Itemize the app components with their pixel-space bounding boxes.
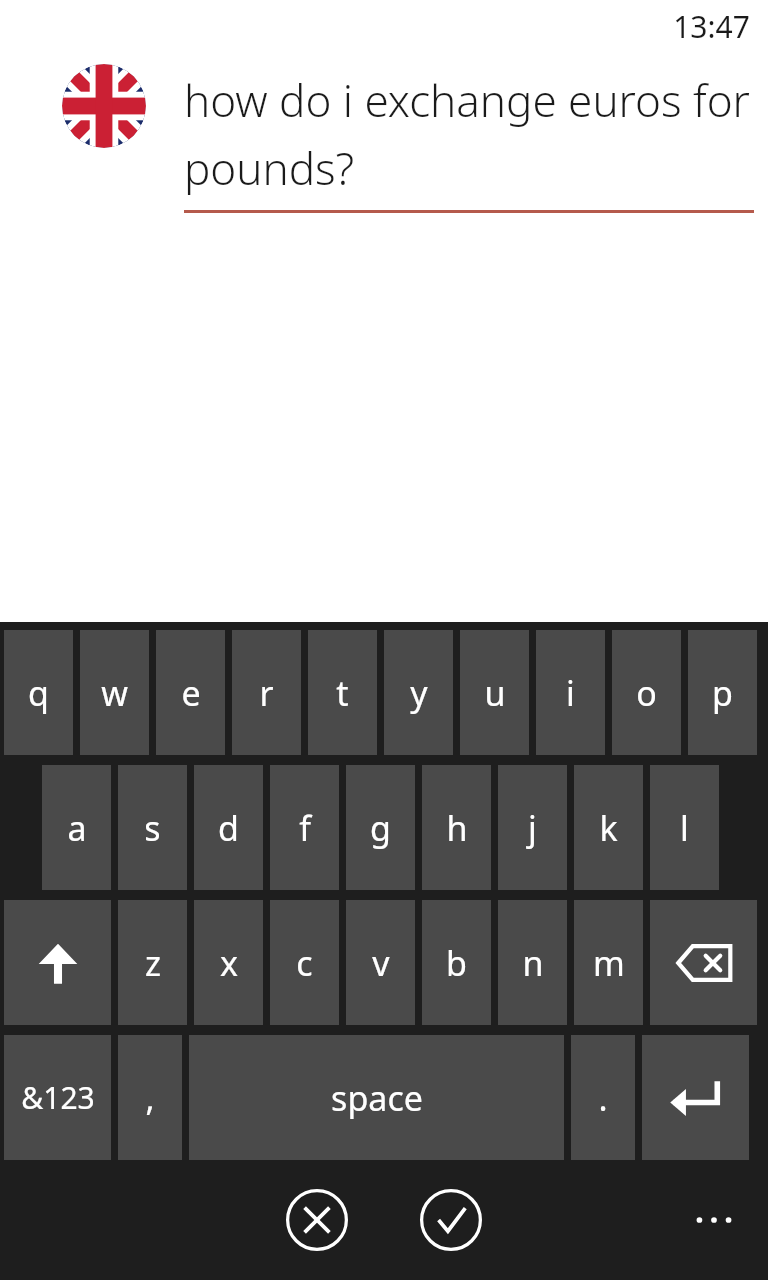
staticText: , [145,1075,155,1121]
button[interactable]: More options [682,1188,746,1252]
button[interactable]: q [4,630,73,755]
staticText: l [680,805,689,851]
button[interactable]: Shift [4,900,111,1025]
staticText: o [636,670,657,716]
staticText: n [522,940,544,986]
staticText: how do i exchange euros for pounds? [184,70,754,198]
staticText: d [218,805,239,851]
staticText: t [336,670,349,716]
button[interactable]: d [194,765,263,890]
staticText: c [296,940,313,986]
staticText: 13:47 [673,6,750,47]
staticText: j [528,805,537,851]
staticText: k [599,805,618,851]
button[interactable]: x [194,900,263,1025]
staticText: s [144,805,161,851]
button[interactable]: , [118,1035,182,1160]
staticText: y [410,670,428,716]
staticText: &123 [21,1077,95,1118]
button[interactable]: y [384,630,453,755]
button[interactable]: r [232,630,301,755]
staticText: a [67,805,87,851]
button[interactable]: w [80,630,149,755]
button[interactable]: z [118,900,187,1025]
button[interactable]: f [270,765,339,890]
staticText: g [370,805,391,851]
button[interactable]: v [346,900,415,1025]
button[interactable]: t [308,630,377,755]
staticText: i [566,670,575,716]
button[interactable]: p [688,630,757,755]
button[interactable]: j [498,765,567,890]
button[interactable]: Cancel [282,1185,352,1255]
button[interactable]: . [571,1035,635,1160]
button[interactable]: n [498,900,567,1025]
button[interactable]: g [346,765,415,890]
button[interactable]: how do i exchange euros for pounds? [184,70,754,198]
staticText: w [101,670,128,716]
staticText: . [598,1075,608,1121]
button[interactable]: &123 [4,1035,111,1160]
button[interactable]: c [270,900,339,1025]
button[interactable]: l [650,765,719,890]
button[interactable]: space [189,1035,564,1160]
button[interactable]: h [422,765,491,890]
button[interactable]: k [574,765,643,890]
button[interactable]: Backspace [650,900,757,1025]
staticText: m [593,940,625,986]
staticText: f [299,805,311,851]
button[interactable]: Language: English [62,64,146,148]
staticText: q [28,670,49,716]
button[interactable]: m [574,900,643,1025]
staticText: e [181,670,201,716]
button[interactable]: s [118,765,187,890]
staticText: u [484,670,506,716]
button[interactable]: u [460,630,529,755]
staticText: x [220,940,238,986]
button[interactable]: a [42,765,111,890]
button[interactable]: e [156,630,225,755]
button[interactable]: i [536,630,605,755]
staticText: space [331,1075,423,1121]
staticText: v [372,940,390,986]
staticText: z [145,940,161,986]
button[interactable]: Enter [642,1035,749,1160]
staticText: r [259,670,274,716]
staticText: h [446,805,468,851]
button[interactable]: Accept [416,1185,486,1255]
button[interactable]: o [612,630,681,755]
staticText: b [446,940,467,986]
button[interactable]: b [422,900,491,1025]
staticText: p [712,670,733,716]
